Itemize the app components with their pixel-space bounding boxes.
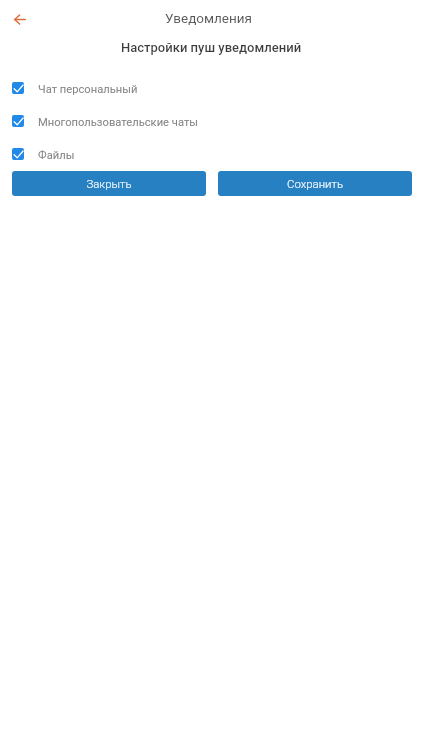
button[interactable]: Чат персональный xyxy=(0,71,422,104)
staticText: Уведомления xyxy=(165,10,252,26)
staticText: Чат персональный xyxy=(38,83,138,96)
button[interactable]: Многопользовательские чаты xyxy=(0,104,422,137)
button[interactable]: Back xyxy=(6,5,34,33)
button[interactable]: Файлы xyxy=(0,137,422,170)
staticText: Многопользовательские чаты xyxy=(38,116,198,129)
staticText: Файлы xyxy=(38,149,75,162)
staticText: Настройки пуш уведомлений xyxy=(121,40,302,55)
staticText: Закрыть xyxy=(86,177,132,190)
button[interactable]: Закрыть xyxy=(12,171,206,196)
staticText: Сохранить xyxy=(287,177,343,190)
button[interactable]: Сохранить xyxy=(218,171,412,196)
